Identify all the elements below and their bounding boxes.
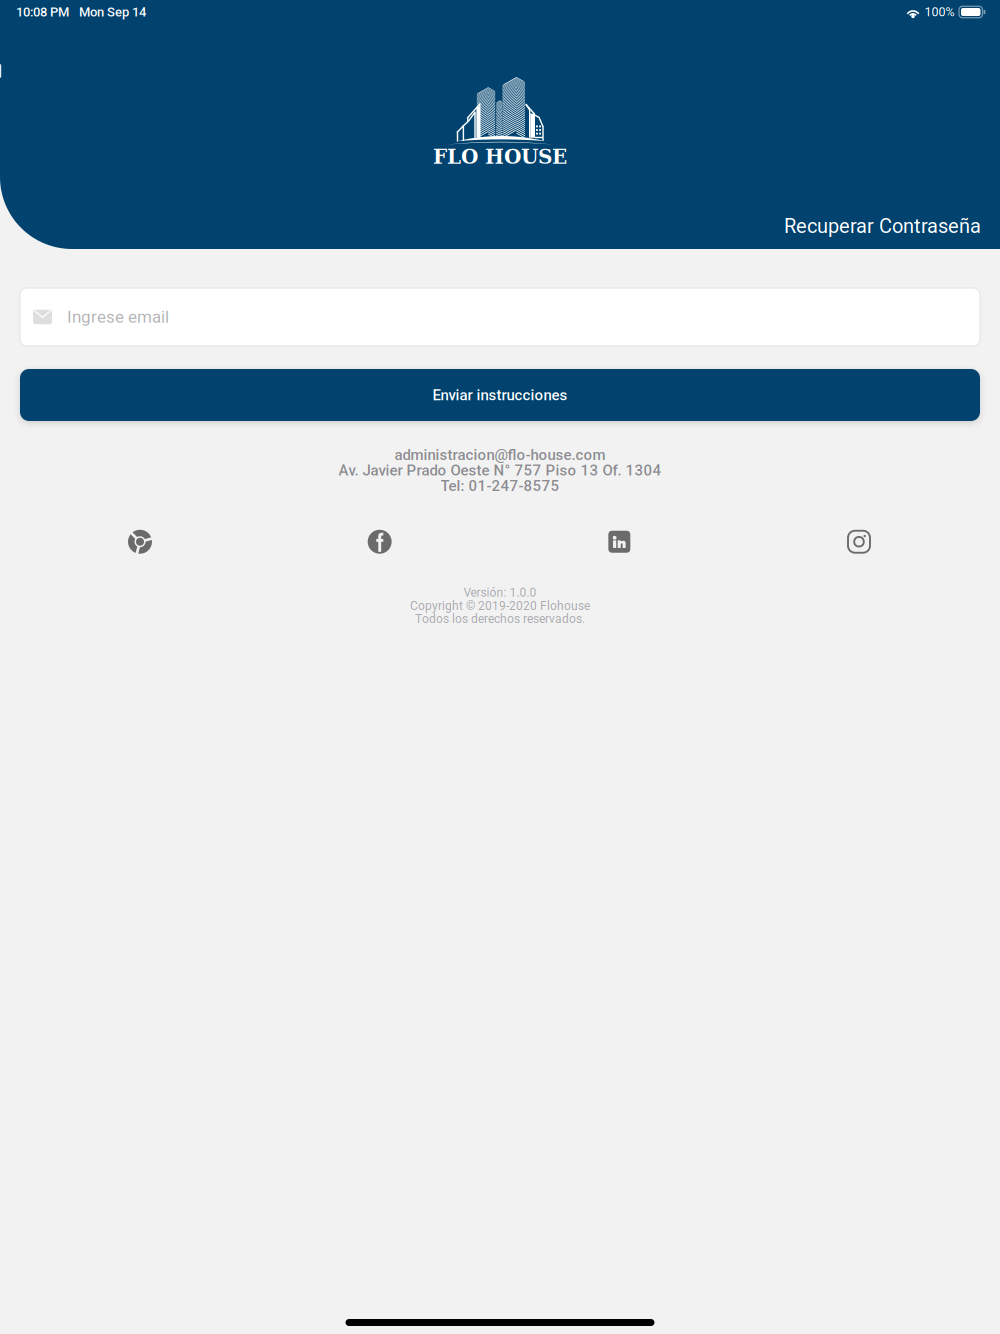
button[interactable]: Instagram xyxy=(846,529,872,555)
staticText: 10:08 PM xyxy=(16,4,69,20)
staticText: Todos los derechos reservados. xyxy=(415,612,585,626)
button[interactable]: LinkedIn xyxy=(606,529,632,555)
button[interactable]: Facebook xyxy=(367,529,393,555)
staticText: 100% xyxy=(924,5,954,19)
staticText: administracion@flo-house.com xyxy=(394,446,605,464)
button[interactable]: Enviar instrucciones xyxy=(20,369,980,421)
staticText: Enviar instrucciones xyxy=(432,386,567,404)
staticText: Copyright © 2019-2020 Flohouse xyxy=(410,599,590,613)
staticText: FLO HOUSE xyxy=(433,145,567,168)
staticText: Av. Javier Prado Oeste N° 757 Piso 13 Of… xyxy=(338,462,661,479)
staticText: Recuperar Contraseña xyxy=(784,215,981,238)
staticText: Versión: 1.0.0 xyxy=(463,586,536,600)
staticText: Ingrese email xyxy=(67,307,169,327)
staticText: Tel: 01-247-8575 xyxy=(440,477,559,495)
staticText: Mon Sep 14 xyxy=(79,4,146,20)
button[interactable]: Sitio web xyxy=(127,529,153,555)
